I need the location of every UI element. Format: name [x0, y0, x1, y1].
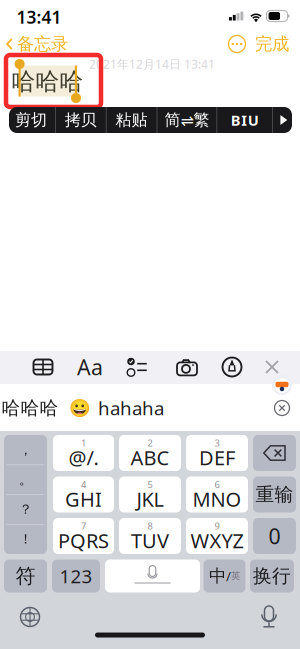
button[interactable]: 2	[119, 435, 181, 471]
staticText: 粘贴	[116, 110, 148, 130]
staticText: 1	[81, 437, 86, 449]
button[interactable]: 7	[53, 518, 114, 554]
button[interactable]: 空格 / 语音	[105, 559, 200, 592]
staticText: 哈哈哈	[1, 396, 58, 419]
button[interactable]: 。	[4, 465, 47, 494]
button[interactable]: 文本格式	[75, 351, 105, 383]
staticText: JKL	[136, 486, 163, 512]
staticText: I	[241, 110, 247, 130]
button[interactable]: 9	[186, 518, 248, 554]
staticText: DEF	[199, 444, 235, 471]
button[interactable]: 哈哈哈	[0, 389, 63, 426]
button[interactable]: 5	[119, 476, 181, 512]
button[interactable]: 8	[119, 518, 181, 554]
button[interactable]: 收起键盘	[257, 351, 287, 383]
staticText: GHI	[65, 486, 102, 512]
button[interactable]: 4	[53, 476, 114, 512]
button[interactable]: 0	[253, 518, 296, 554]
staticText: 13:41	[16, 5, 61, 28]
button[interactable]: 标记	[217, 351, 247, 383]
staticText: 2021年12月14日 13:41	[89, 56, 215, 72]
staticText: 剪切	[15, 110, 47, 130]
staticText: 8	[147, 520, 152, 532]
staticText: 符	[15, 564, 35, 588]
button[interactable]: 清单	[122, 351, 152, 383]
staticText: 0	[268, 522, 280, 550]
staticText: 简⇌繁	[164, 110, 209, 130]
button[interactable]: ！	[4, 525, 47, 554]
button[interactable]: ，	[4, 435, 47, 464]
staticText: ！	[19, 531, 32, 547]
button[interactable]: 清除输入	[269, 395, 295, 421]
staticText: WXYZ	[190, 527, 243, 554]
button[interactable]: 表格	[28, 351, 58, 383]
staticText: 哈哈哈	[11, 67, 83, 96]
staticText: 9	[214, 520, 219, 532]
button[interactable]: 6	[186, 476, 248, 512]
button[interactable]: 完成	[249, 28, 295, 60]
staticText: hahaha	[98, 396, 164, 420]
button[interactable]: 剪切	[7, 107, 55, 133]
button[interactable]: 重输	[253, 476, 296, 512]
button[interactable]: 拷贝	[56, 107, 106, 133]
staticText: 7	[81, 520, 86, 532]
button[interactable]: 格式	[217, 107, 272, 133]
button[interactable]: 符	[4, 559, 47, 592]
button[interactable]: 简⇌繁	[157, 107, 216, 133]
button[interactable]: ？	[4, 495, 47, 524]
button[interactable]: 删除	[253, 435, 296, 471]
button[interactable]: 更多	[224, 32, 250, 56]
staticText: ？	[19, 501, 32, 518]
staticText: 3	[214, 437, 219, 449]
staticText: 重输	[255, 483, 293, 506]
button[interactable]: 粘贴	[107, 107, 157, 133]
staticText: @/.	[68, 444, 98, 471]
staticText: 2	[147, 437, 152, 449]
staticText: Aa	[77, 353, 103, 381]
staticText: 😀	[69, 398, 91, 418]
staticText: B	[231, 110, 241, 130]
staticText: U	[248, 110, 259, 130]
staticText: TUV	[131, 527, 169, 554]
staticText: 4	[81, 478, 86, 491]
staticText: 英	[231, 570, 240, 582]
staticText: 6	[214, 478, 219, 491]
staticText: 拷贝	[65, 110, 97, 130]
button[interactable]: 听写	[252, 600, 286, 634]
staticText: 换行	[253, 564, 291, 587]
button[interactable]: 备忘录	[2, 28, 72, 60]
staticText: ABC	[130, 444, 169, 471]
button[interactable]: 切换键盘	[13, 600, 47, 634]
staticText: 中	[209, 565, 226, 587]
staticText: /	[226, 567, 231, 585]
staticText: 123	[59, 564, 92, 588]
button[interactable]: 相机	[172, 351, 202, 383]
button[interactable]: 1	[53, 435, 114, 471]
button[interactable]: hahaha	[93, 389, 169, 427]
button[interactable]: 更多选项	[273, 107, 294, 133]
staticText: 备忘录	[17, 33, 68, 55]
staticText: 5	[147, 478, 152, 491]
button[interactable]: 3	[186, 435, 248, 471]
button[interactable]: 123	[52, 559, 100, 592]
staticText: 。	[19, 471, 32, 488]
staticText: 完成	[255, 33, 289, 55]
staticText: ，	[19, 442, 32, 458]
button[interactable]: 换行	[250, 559, 294, 592]
button[interactable]: 中	[203, 559, 245, 592]
staticText: MNO	[192, 486, 241, 512]
staticText: PQRS	[58, 527, 109, 554]
